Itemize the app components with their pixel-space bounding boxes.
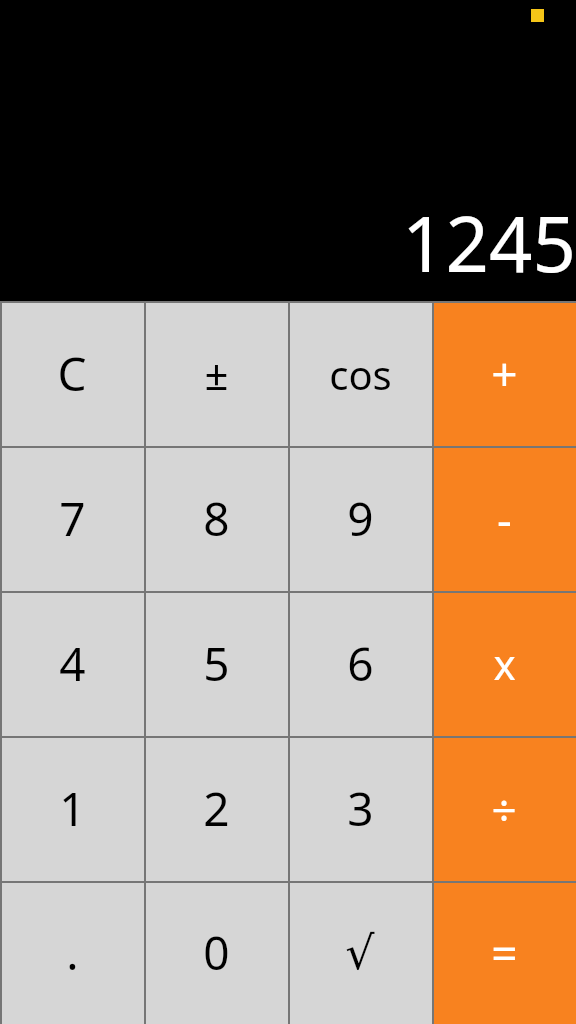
staticText: 8 bbox=[203, 487, 230, 550]
staticText: - bbox=[497, 487, 512, 550]
staticText: 4 bbox=[59, 632, 86, 695]
button[interactable]: . bbox=[0, 881, 144, 1024]
button[interactable]: Equals bbox=[432, 881, 576, 1024]
button[interactable]: 3 bbox=[288, 736, 432, 881]
staticText: 5 bbox=[203, 632, 230, 695]
staticText: . bbox=[66, 921, 79, 984]
staticText: √ bbox=[345, 926, 375, 980]
button[interactable]: 6 bbox=[288, 591, 432, 736]
button[interactable]: Plus minus bbox=[144, 301, 288, 446]
button[interactable]: 1 bbox=[0, 736, 144, 881]
button[interactable]: 8 bbox=[144, 446, 288, 591]
staticText: 7 bbox=[59, 487, 86, 550]
staticText: 3 bbox=[347, 777, 374, 840]
staticText: 0 bbox=[203, 921, 230, 984]
staticText: ÷ bbox=[491, 779, 517, 839]
button[interactable]: 2 bbox=[144, 736, 288, 881]
staticText: 2 bbox=[203, 777, 230, 840]
button[interactable]: Multiply bbox=[432, 591, 576, 736]
button[interactable]: Square root bbox=[288, 881, 432, 1024]
staticText: 1 bbox=[59, 777, 86, 840]
staticText: + bbox=[491, 342, 518, 405]
button[interactable]: 0 bbox=[144, 881, 288, 1024]
button[interactable]: 9 bbox=[288, 446, 432, 591]
staticText: x bbox=[493, 635, 516, 692]
button[interactable]: 5 bbox=[144, 591, 288, 736]
staticText: ± bbox=[204, 345, 229, 402]
button[interactable]: Divide bbox=[432, 736, 576, 881]
staticText: 9 bbox=[347, 487, 374, 550]
button[interactable]: Plus bbox=[432, 301, 576, 446]
button[interactable]: C bbox=[0, 301, 144, 446]
staticText: C bbox=[57, 342, 87, 405]
staticText: 6 bbox=[347, 632, 374, 695]
staticText: cos bbox=[329, 347, 392, 401]
staticText: = bbox=[491, 921, 518, 984]
staticText: 1245 bbox=[402, 191, 576, 295]
button[interactable]: cos bbox=[288, 301, 432, 446]
button[interactable]: 7 bbox=[0, 446, 144, 591]
button[interactable]: 4 bbox=[0, 591, 144, 736]
button[interactable]: Minus bbox=[432, 446, 576, 591]
